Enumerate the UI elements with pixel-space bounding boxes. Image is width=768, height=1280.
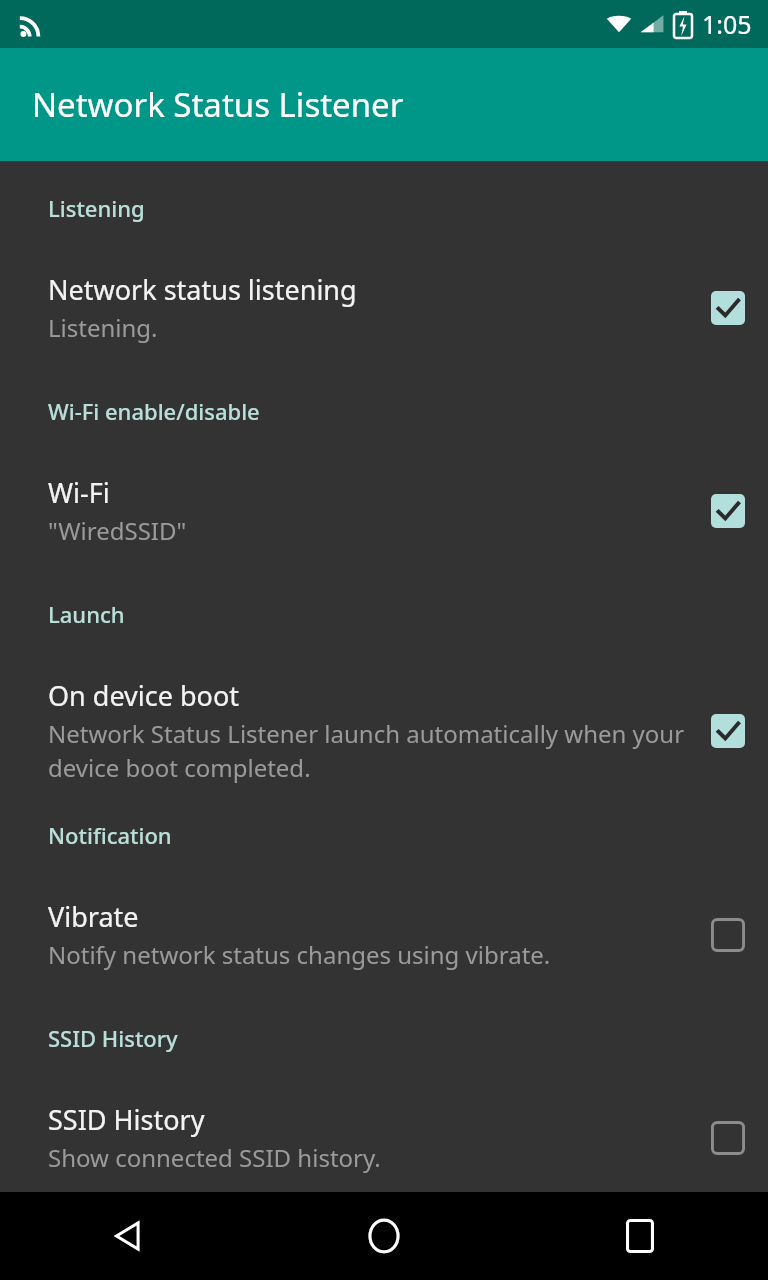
button[interactable]: Network status listening — [0, 267, 768, 348]
staticText: On device boot — [48, 677, 239, 714]
staticText: 1:05 — [702, 7, 752, 41]
button[interactable]: Recent apps — [512, 1192, 768, 1280]
staticText: "WiredSSID" — [48, 514, 187, 547]
staticText: Vibrate — [48, 898, 139, 935]
button[interactable]: Home — [256, 1192, 512, 1280]
staticText: Wi-Fi — [48, 474, 110, 511]
button[interactable]: On device boot — [0, 673, 768, 788]
staticText: Listening — [48, 193, 145, 223]
staticText: Network Status Listener — [32, 82, 404, 127]
staticText: Wi-Fi enable/disable — [48, 396, 260, 426]
staticText: SSID History — [48, 1101, 205, 1138]
staticText: Show connected SSID history. — [48, 1141, 381, 1174]
button[interactable]: SSID History — [0, 1097, 768, 1178]
staticText: Notification — [48, 820, 172, 850]
button[interactable]: Wi-Fi — [0, 470, 768, 551]
button[interactable]: Vibrate — [0, 894, 768, 975]
button[interactable]: Back — [0, 1192, 256, 1280]
staticText: Notify network status changes using vibr… — [48, 938, 551, 971]
staticText: Launch — [48, 599, 125, 629]
staticText: Network status listening — [48, 271, 357, 308]
staticText: Listening. — [48, 311, 158, 344]
staticText: SSID History — [48, 1023, 178, 1053]
staticText: Network Status Listener launch automatic… — [48, 717, 696, 784]
